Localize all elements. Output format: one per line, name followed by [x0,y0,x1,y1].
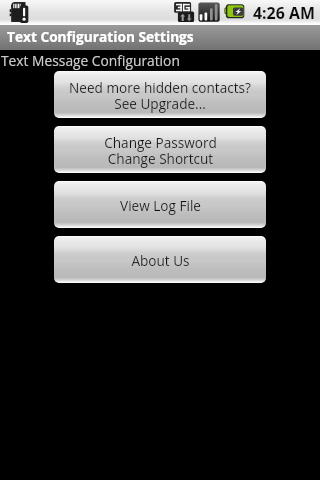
staticText: Need more hidden contacts? See Upgrade..… [69,78,251,113]
staticText: Change Password Change Shortcut [104,133,217,168]
button[interactable]: About Us [54,236,266,283]
staticText: Text Message Configuration [1,51,180,70]
other: SD card [9,1,30,24]
other: Signal strength [198,2,220,22]
button[interactable]: Need more hidden contacts? See Upgrade..… [54,71,266,118]
other: 3G data [174,2,195,23]
button[interactable]: View Log File [54,181,266,228]
other: Battery charging [224,4,245,19]
button[interactable]: Change Password Change Shortcut [54,126,266,173]
staticText: About Us [131,251,190,270]
staticText: Text Configuration Settings [7,27,194,46]
staticText: View Log File [120,196,201,215]
staticText: 4:26 AM [253,2,315,24]
